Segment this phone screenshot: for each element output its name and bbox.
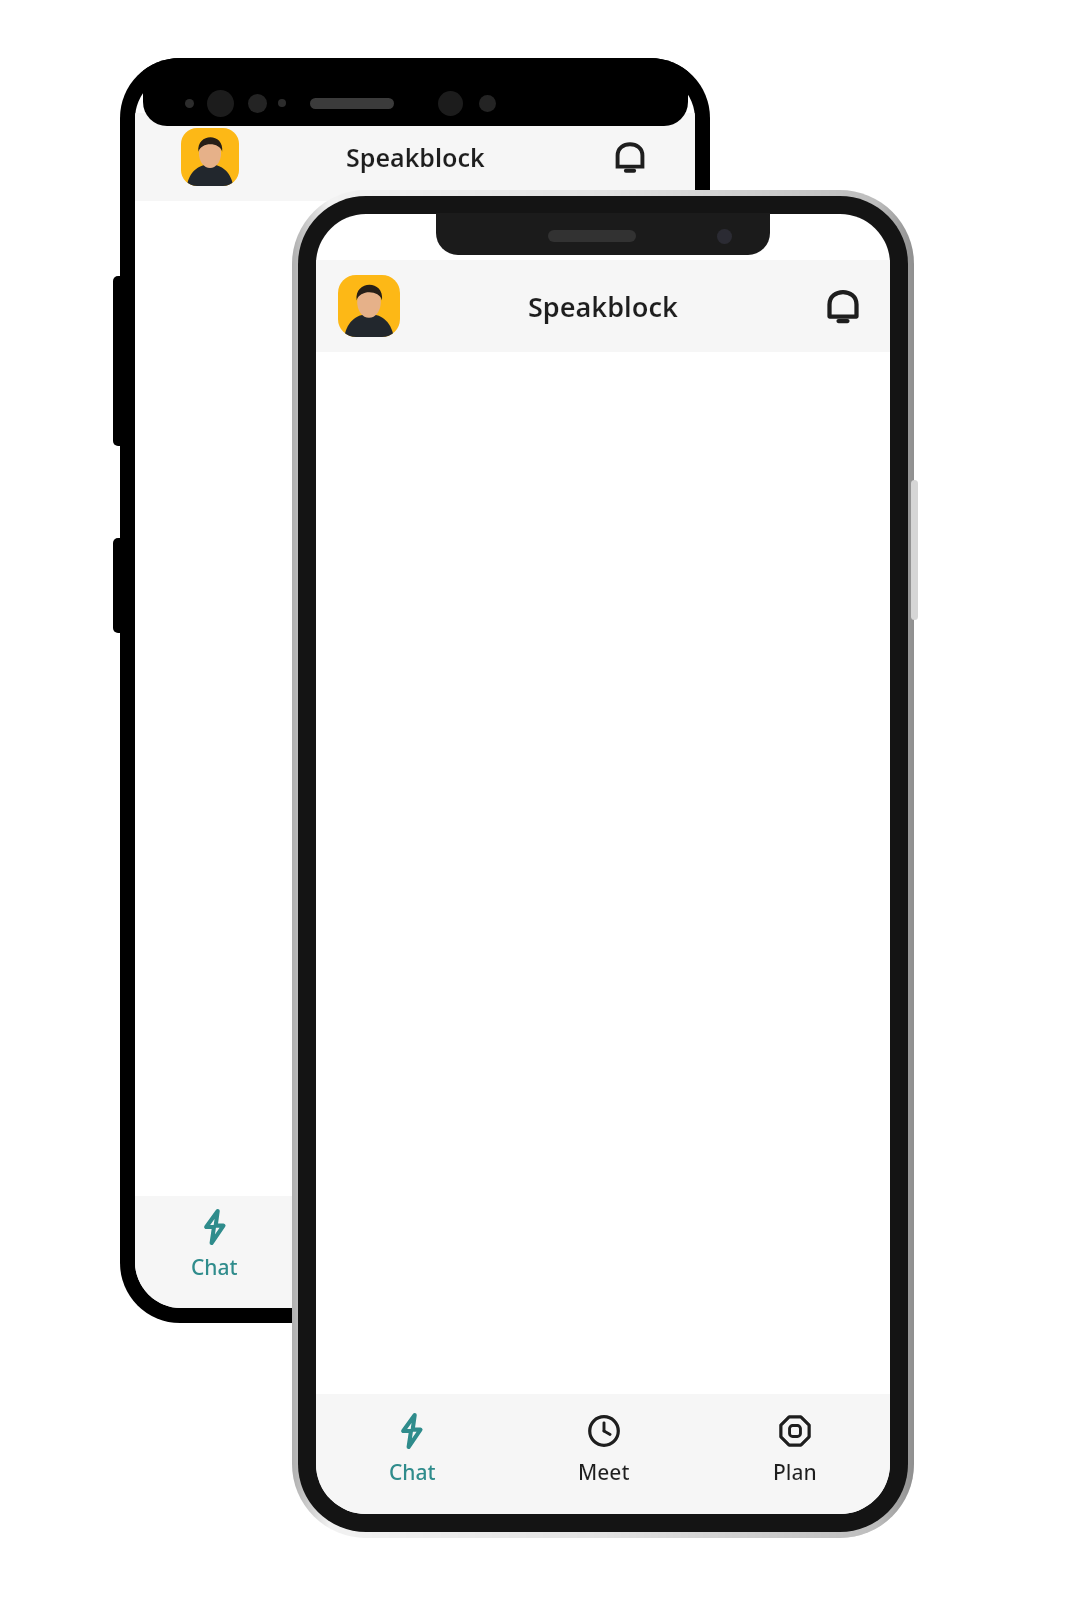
button[interactable]: Plan <box>699 1394 890 1514</box>
staticText: Chat <box>191 1253 238 1282</box>
button[interactable]: Chat <box>316 1394 508 1514</box>
button[interactable]: Notifications <box>818 281 868 331</box>
button[interactable]: Notifications <box>607 134 653 180</box>
staticText: Chat <box>389 1458 436 1487</box>
button[interactable]: Profile <box>181 128 239 186</box>
staticText: Plan <box>773 1458 817 1487</box>
staticText: Speakblock <box>528 288 678 325</box>
button[interactable]: Profile <box>338 275 400 337</box>
button[interactable]: Chat <box>191 1210 238 1282</box>
button[interactable]: Meet <box>508 1394 699 1514</box>
staticText: Meet <box>578 1458 630 1487</box>
staticText: Speakblock <box>346 140 485 174</box>
